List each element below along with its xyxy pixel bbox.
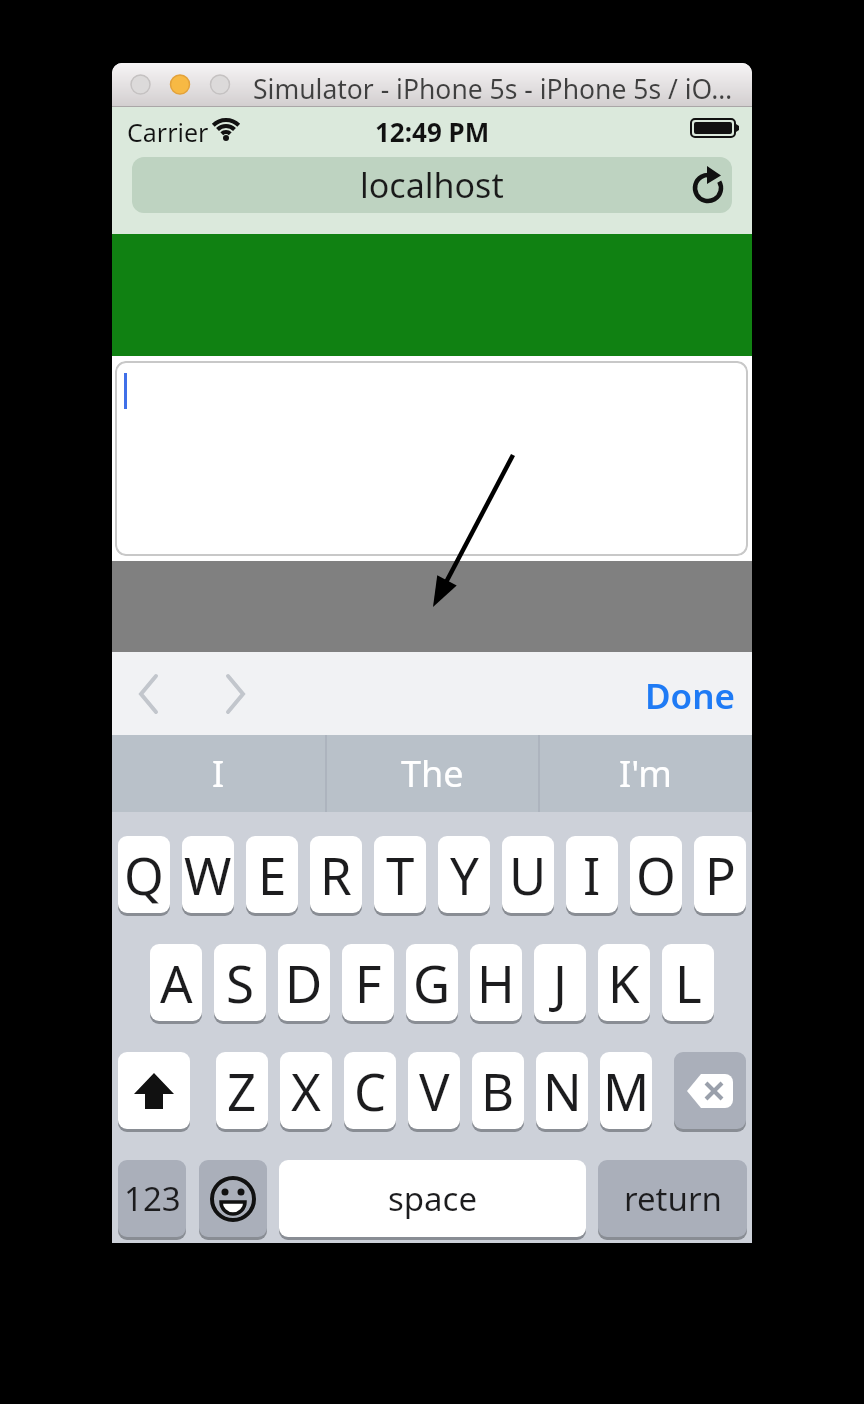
staticText: Y [450, 840, 479, 909]
staticText: U [509, 840, 547, 909]
button[interactable]: G [406, 944, 458, 1021]
staticText: I [583, 840, 601, 909]
button[interactable]: H [470, 944, 522, 1021]
button[interactable]: Q [118, 836, 170, 913]
button[interactable]: C [344, 1052, 396, 1129]
staticText: O [636, 840, 676, 909]
staticText: P [705, 840, 736, 909]
button[interactable] [692, 170, 726, 204]
button[interactable]: I [112, 735, 325, 812]
button[interactable]: The [326, 735, 538, 812]
button[interactable]: W [182, 836, 234, 913]
staticText: space [388, 1176, 478, 1221]
staticText: F [355, 948, 382, 1017]
button[interactable] [115, 361, 748, 556]
button[interactable]: N [536, 1052, 588, 1129]
staticText: I'm [619, 749, 672, 798]
staticText: G [413, 948, 451, 1017]
button[interactable]: Y [438, 836, 490, 913]
staticText: D [285, 948, 323, 1017]
staticText: Q [124, 840, 164, 909]
button[interactable] [138, 674, 160, 714]
staticText: Done [645, 672, 736, 718]
button[interactable]: Done [632, 672, 736, 718]
button[interactable]: P [694, 836, 746, 913]
staticText: W [184, 840, 232, 909]
button[interactable]: 123 [118, 1160, 186, 1237]
button[interactable]: localhost [132, 157, 732, 213]
button[interactable]: D [278, 944, 330, 1021]
button[interactable]: V [408, 1052, 460, 1129]
button[interactable]: T [374, 836, 426, 913]
button[interactable]: I [566, 836, 618, 913]
staticText: K [608, 948, 640, 1017]
button[interactable]: U [502, 836, 554, 913]
button[interactable] [118, 1052, 190, 1129]
button[interactable]: Z [216, 1052, 268, 1129]
staticText: X [291, 1056, 321, 1125]
button[interactable]: B [472, 1052, 524, 1129]
button[interactable] [674, 1052, 746, 1129]
staticText: R [320, 840, 352, 909]
staticText: J [553, 948, 567, 1017]
staticText: C [354, 1056, 387, 1125]
staticText: V [419, 1056, 450, 1125]
staticText: Simulator - iPhone 5s - iPhone 5s / iO… [253, 71, 733, 107]
button[interactable] [199, 1160, 267, 1237]
button[interactable]: space [279, 1160, 586, 1237]
button[interactable] [224, 674, 246, 714]
staticText: 12:49 PM [375, 114, 490, 149]
staticText: Carrier [127, 115, 209, 149]
button[interactable]: S [214, 944, 266, 1021]
staticText: Z [227, 1056, 257, 1125]
button[interactable]: M [600, 1052, 652, 1129]
button[interactable]: O [630, 836, 682, 913]
staticText: return [624, 1176, 722, 1221]
button[interactable] [131, 75, 239, 94]
staticText: B [481, 1056, 515, 1125]
button[interactable]: return [598, 1160, 747, 1237]
button[interactable]: A [150, 944, 202, 1021]
button[interactable]: E [246, 836, 298, 913]
staticText: H [477, 948, 515, 1017]
staticText: 123 [124, 1176, 181, 1221]
button[interactable]: I'm [539, 735, 752, 812]
staticText: N [543, 1056, 582, 1125]
button[interactable]: J [534, 944, 586, 1021]
staticText: M [603, 1056, 650, 1125]
staticText: S [226, 948, 254, 1017]
staticText: localhost [360, 162, 504, 208]
button[interactable]: L [662, 944, 714, 1021]
staticText: L [675, 948, 702, 1017]
staticText: E [258, 840, 287, 909]
staticText: T [386, 840, 415, 909]
button[interactable]: X [280, 1052, 332, 1129]
button[interactable]: F [342, 944, 394, 1021]
staticText: A [160, 948, 193, 1017]
button[interactable]: K [598, 944, 650, 1021]
staticText: I [212, 749, 225, 798]
staticText: The [401, 749, 464, 798]
button[interactable]: R [310, 836, 362, 913]
